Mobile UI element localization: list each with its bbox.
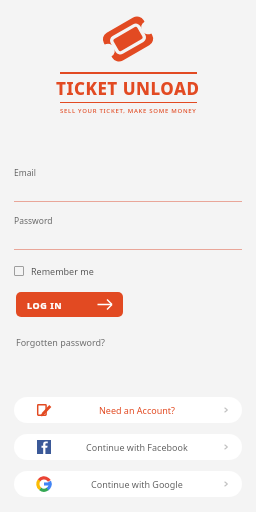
other: Need an account	[37, 403, 51, 417]
button[interactable]: LOG IN	[16, 292, 123, 317]
staticText: TICKET UNLOAD	[56, 77, 200, 100]
button[interactable]: Remember me	[12, 262, 96, 280]
button[interactable]: Forgotten password?	[14, 334, 107, 350]
staticText: Need an Account?	[99, 404, 175, 416]
staticText: Continue with Facebook	[86, 441, 188, 453]
other: Continue with Google	[37, 477, 51, 491]
staticText: SELL YOUR TICKET, MAKE SOME MONEY	[60, 107, 197, 115]
button[interactable]: Need an account	[14, 397, 242, 423]
button[interactable]: Continue with Facebook	[14, 434, 242, 460]
staticText: Remember me	[31, 265, 94, 277]
staticText: Continue with Google	[91, 478, 183, 490]
staticText: LOG IN	[27, 299, 63, 311]
button[interactable]: Continue with Google	[14, 471, 242, 497]
staticText: Forgotten password?	[16, 336, 105, 348]
staticText: Password	[14, 215, 53, 227]
other: Continue with Facebook	[37, 440, 51, 454]
staticText: Email	[14, 167, 36, 179]
